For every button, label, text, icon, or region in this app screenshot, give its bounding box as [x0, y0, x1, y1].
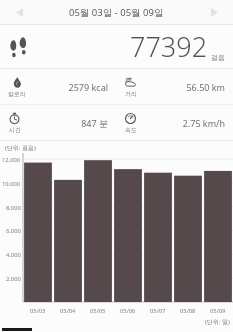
staticText: 05월 03일 - 05월 09일: [69, 6, 164, 19]
staticText: 10,000: [2, 180, 21, 188]
staticText: 05/03: [30, 307, 46, 315]
staticText: 05/04: [60, 307, 76, 315]
staticText: (단위: 일): [205, 318, 230, 326]
staticText: 847 분: [21, 117, 108, 129]
staticText: 05/09: [210, 307, 226, 315]
button[interactable]: Previous week: [0, 0, 38, 24]
staticText: 걸음: [211, 53, 225, 62]
staticText: 05/06: [120, 307, 136, 315]
staticText: 6,000: [6, 227, 21, 235]
staticText: (단위: 걸음): [5, 144, 36, 152]
staticText: 2,000: [6, 275, 21, 283]
button[interactable]: 77392: [0, 25, 233, 68]
other: Duration: [8, 112, 21, 134]
staticText: 4,000: [6, 251, 21, 259]
staticText: 77392: [130, 28, 208, 65]
other: Calories: [8, 76, 26, 98]
staticText: 12,000: [2, 156, 21, 164]
staticText: 2.75 km/h: [137, 117, 225, 129]
staticText: 칼로리: [8, 90, 26, 98]
staticText: 시간: [9, 126, 21, 134]
staticText: 05/07: [150, 307, 166, 315]
other: Distance: [124, 76, 137, 98]
staticText: 8,000: [6, 204, 21, 212]
staticText: 속도: [125, 126, 137, 134]
staticText: 05/05: [90, 307, 106, 315]
button[interactable]: Duration: [0, 105, 116, 140]
button[interactable]: Next week: [195, 0, 233, 24]
staticText: 05/08: [180, 307, 196, 315]
button[interactable]: Speed: [116, 105, 233, 140]
button[interactable]: Distance: [116, 69, 233, 104]
button[interactable]: Calories: [0, 69, 116, 104]
other: Speed: [124, 112, 137, 134]
staticText: 56.50 km: [137, 81, 225, 93]
staticText: 2579 kcal: [26, 81, 108, 93]
staticText: 거리: [125, 90, 137, 98]
